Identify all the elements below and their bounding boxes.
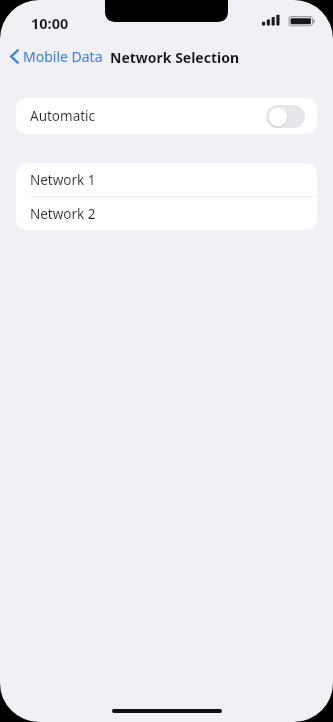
button[interactable]: Network 1 — [16, 163, 317, 196]
staticText: Automatic — [30, 107, 96, 125]
button[interactable]: Automatic, off — [266, 105, 305, 128]
button[interactable]: Automatic — [16, 98, 317, 134]
staticText: Network 2 — [30, 205, 96, 223]
staticText: Mobile Data — [23, 47, 103, 66]
button[interactable]: Network 2 — [16, 197, 317, 230]
staticText: Network 1 — [30, 171, 96, 189]
button[interactable]: Mobile Data — [5, 41, 111, 71]
staticText: 10:00 — [31, 13, 69, 33]
staticText: Network Selection — [110, 48, 240, 67]
